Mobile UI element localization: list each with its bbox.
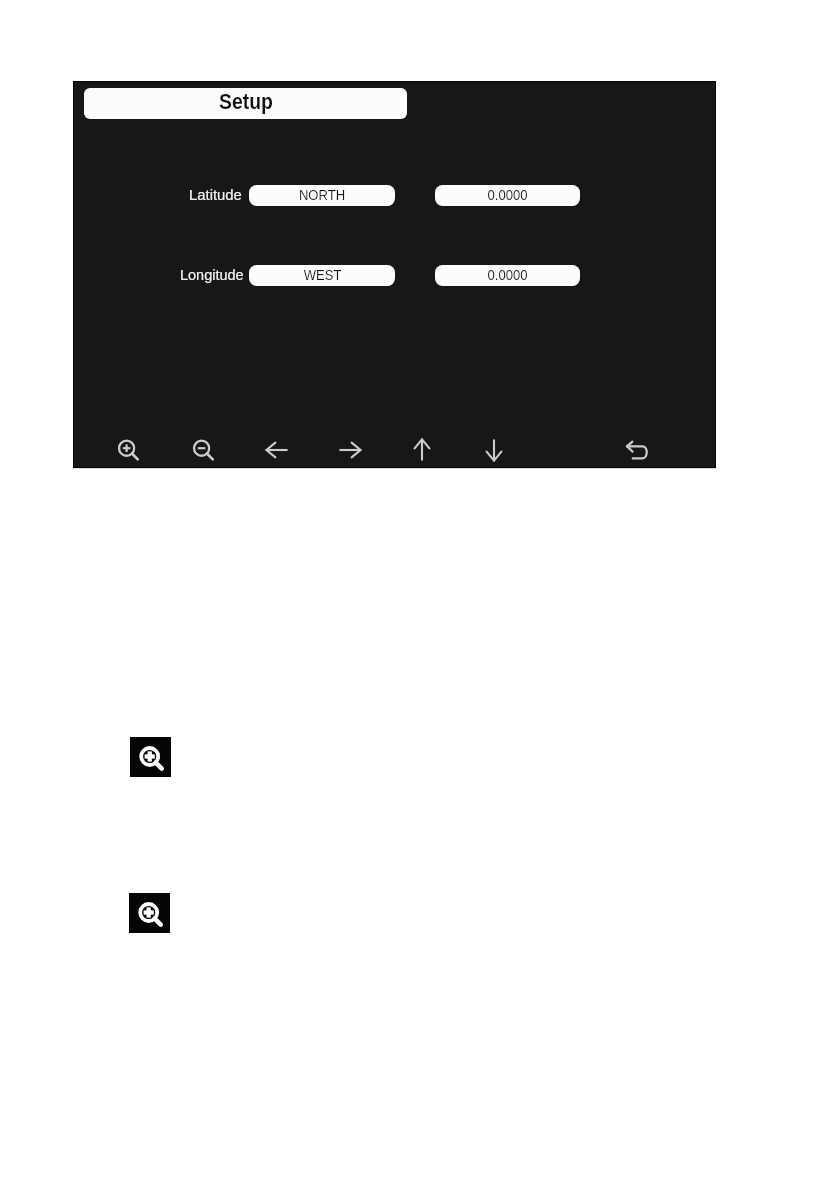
button[interactable]: Zoom in	[129, 893, 170, 933]
button[interactable]: 0.0000	[435, 185, 580, 206]
button[interactable]: Setup	[84, 88, 407, 119]
button[interactable]: Zoom in	[112, 434, 142, 464]
button[interactable]: Move down	[479, 435, 509, 465]
staticText: WEST	[303, 267, 342, 283]
button[interactable]: Zoom in	[130, 737, 171, 777]
button[interactable]: Move up	[407, 435, 437, 465]
staticText: Setup	[219, 90, 273, 114]
button[interactable]: Zoom out	[187, 434, 217, 464]
staticText: Longitude	[180, 266, 244, 283]
staticText: NORTH	[299, 187, 345, 203]
staticText: 0.0000	[487, 267, 528, 283]
button[interactable]: Move left	[262, 435, 292, 465]
button[interactable]: Back	[622, 435, 652, 465]
button[interactable]: WEST	[249, 265, 395, 286]
staticText: 0.0000	[487, 187, 528, 203]
button[interactable]: NORTH	[249, 185, 395, 206]
staticText: Latitude	[189, 186, 242, 203]
button[interactable]: Move right	[335, 435, 365, 465]
button[interactable]: 0.0000	[435, 265, 580, 286]
